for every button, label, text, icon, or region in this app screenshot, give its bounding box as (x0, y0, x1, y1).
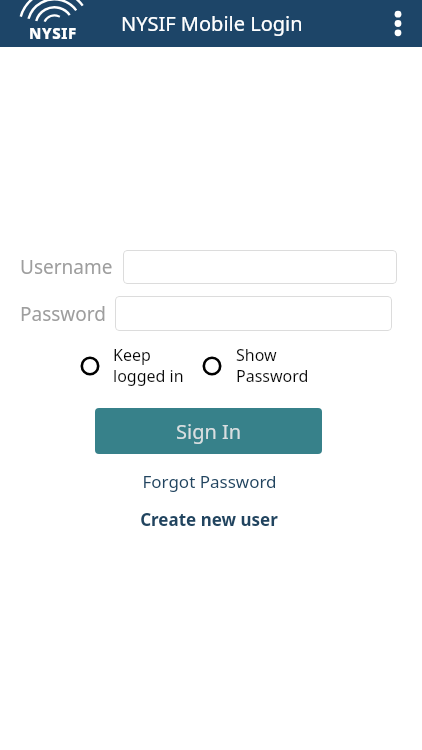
button[interactable]: Password input (115, 296, 392, 331)
button[interactable]: Username input (123, 250, 397, 284)
staticText: Create new user (140, 508, 278, 531)
button[interactable]: Forgot Password (136, 468, 283, 495)
staticText: Username (20, 254, 113, 280)
staticText: Forgot Password (142, 470, 277, 493)
staticText: Show Password (236, 344, 309, 387)
staticText: Password (20, 301, 106, 327)
button[interactable]: Sign In (95, 408, 322, 454)
button[interactable]: Show Password (201, 344, 309, 387)
staticText: Keep logged in (113, 344, 184, 387)
button[interactable]: More options (374, 0, 422, 47)
button[interactable]: NYSIF logo (18, 2, 88, 46)
staticText: NYSIF (29, 23, 77, 43)
staticText: Sign In (176, 418, 242, 445)
staticText: NYSIF Mobile Login (121, 10, 303, 37)
button[interactable]: Create new user (134, 506, 284, 533)
button[interactable]: Keep logged in (79, 344, 184, 387)
